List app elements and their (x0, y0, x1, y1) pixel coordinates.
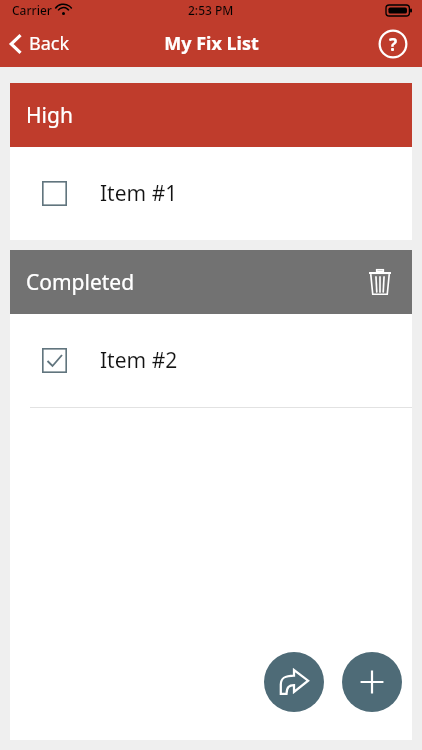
button[interactable]: Item #2 (10, 314, 412, 407)
button[interactable]: Completed (10, 250, 412, 314)
staticText: Item #2 (100, 346, 178, 375)
button[interactable]: Help (376, 27, 410, 61)
button[interactable]: Back (0, 20, 82, 67)
button[interactable]: High (10, 83, 412, 147)
staticText: Completed (26, 268, 135, 297)
staticText: ? (389, 33, 398, 56)
staticText: High (26, 101, 73, 130)
staticText: Back (29, 31, 70, 56)
staticText: My Fix List (164, 31, 259, 56)
staticText: Item #1 (100, 179, 178, 208)
button[interactable]: Add item (342, 652, 402, 712)
staticText: 2:53 PM (188, 2, 234, 18)
button[interactable]: Share (264, 652, 324, 712)
button[interactable]: Delete completed items (360, 262, 400, 302)
staticText: Carrier (12, 2, 52, 18)
button[interactable]: Item #1 (10, 147, 412, 240)
